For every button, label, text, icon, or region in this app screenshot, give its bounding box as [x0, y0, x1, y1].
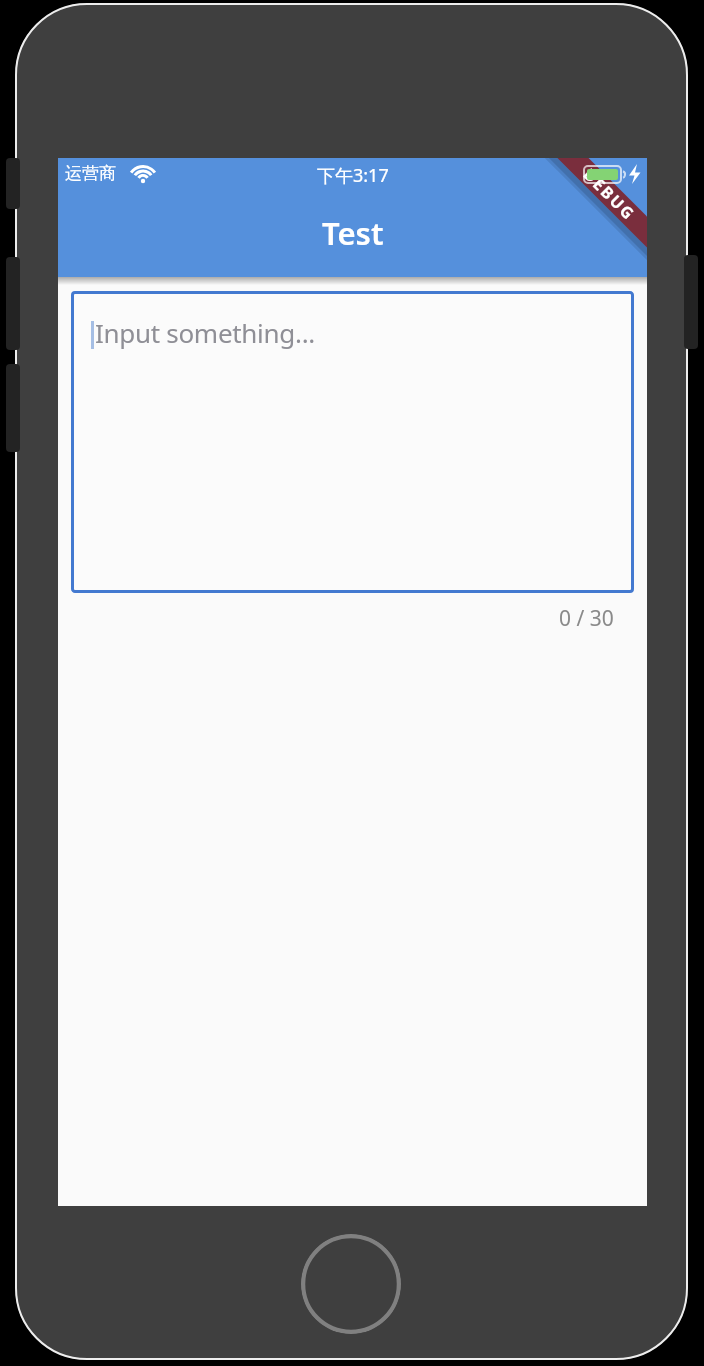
- staticText: 运营商: [65, 163, 116, 184]
- button[interactable]: [301, 1234, 401, 1334]
- staticText: Input something...: [95, 315, 315, 350]
- button[interactable]: Input something...: [71, 291, 634, 593]
- staticText: DEBUG: [579, 164, 640, 225]
- staticText: 下午3:17: [317, 163, 389, 188]
- staticText: Test: [322, 212, 384, 254]
- staticText: 0 / 30: [559, 604, 614, 633]
